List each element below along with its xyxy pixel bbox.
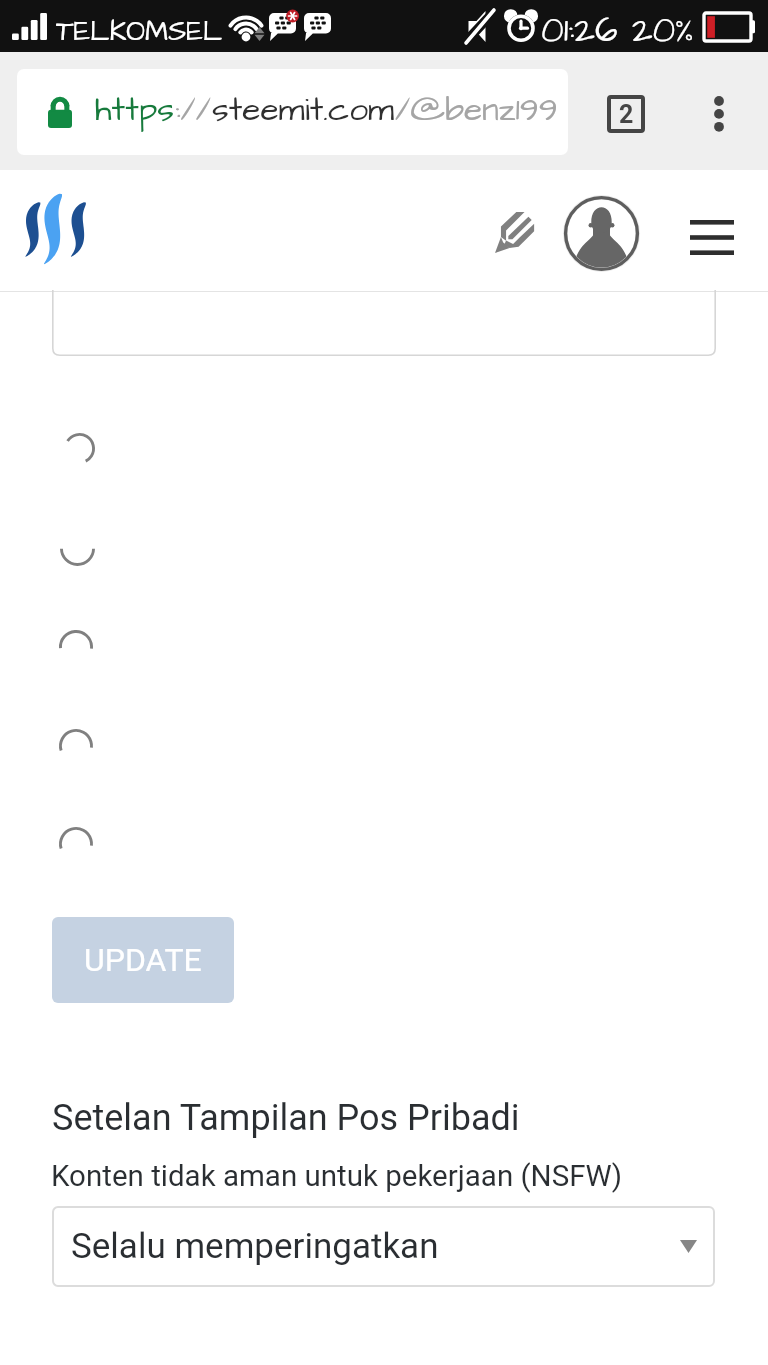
button[interactable]: Profile	[562, 194, 640, 272]
button[interactable]: Menu	[672, 197, 752, 277]
button[interactable]: Selalu memperingatkan	[52, 1206, 715, 1287]
staticText: Konten tidak aman untuk pekerjaan (NSFW)	[51, 1159, 623, 1194]
staticText: Setelan Tampilan Pos Pribadi	[52, 1097, 520, 1139]
staticText: 01:26 20%	[541, 5, 694, 55]
staticText: TELKOMSEL	[56, 12, 223, 51]
staticText: UPDATE	[84, 941, 202, 979]
button[interactable]: Write post	[487, 194, 543, 270]
button[interactable]: Address bar	[17, 69, 568, 155]
button[interactable]: Tabs	[588, 76, 664, 152]
button[interactable]: More options	[682, 76, 756, 152]
staticText: /@benz199	[395, 87, 558, 134]
staticText: steemit.com	[212, 87, 395, 134]
staticText: 2	[619, 100, 634, 129]
button[interactable]: UPDATE	[52, 917, 234, 1003]
staticText: Selalu memperingatkan	[71, 1226, 439, 1267]
staticText: https	[95, 87, 175, 134]
staticText: ://	[175, 87, 212, 134]
